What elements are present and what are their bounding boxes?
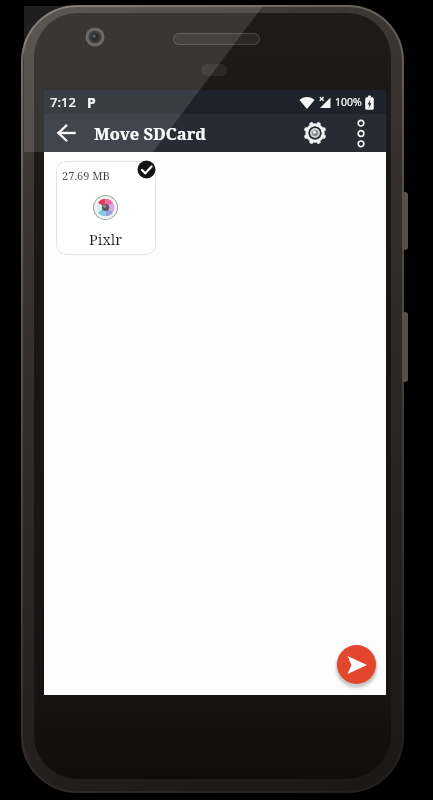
staticText: 7:12: [50, 93, 76, 111]
button[interactable]: 27.69 MB: [56, 161, 156, 255]
staticText: Move SDCard: [94, 122, 207, 144]
staticText: 27.69 MB: [62, 168, 110, 183]
button[interactable]: [44, 114, 88, 152]
button[interactable]: [341, 114, 381, 152]
staticText: Pixlr: [89, 229, 123, 249]
button[interactable]: [337, 645, 376, 684]
button[interactable]: [295, 114, 335, 152]
staticText: P: [87, 93, 96, 112]
staticText: 100%: [335, 95, 362, 109]
